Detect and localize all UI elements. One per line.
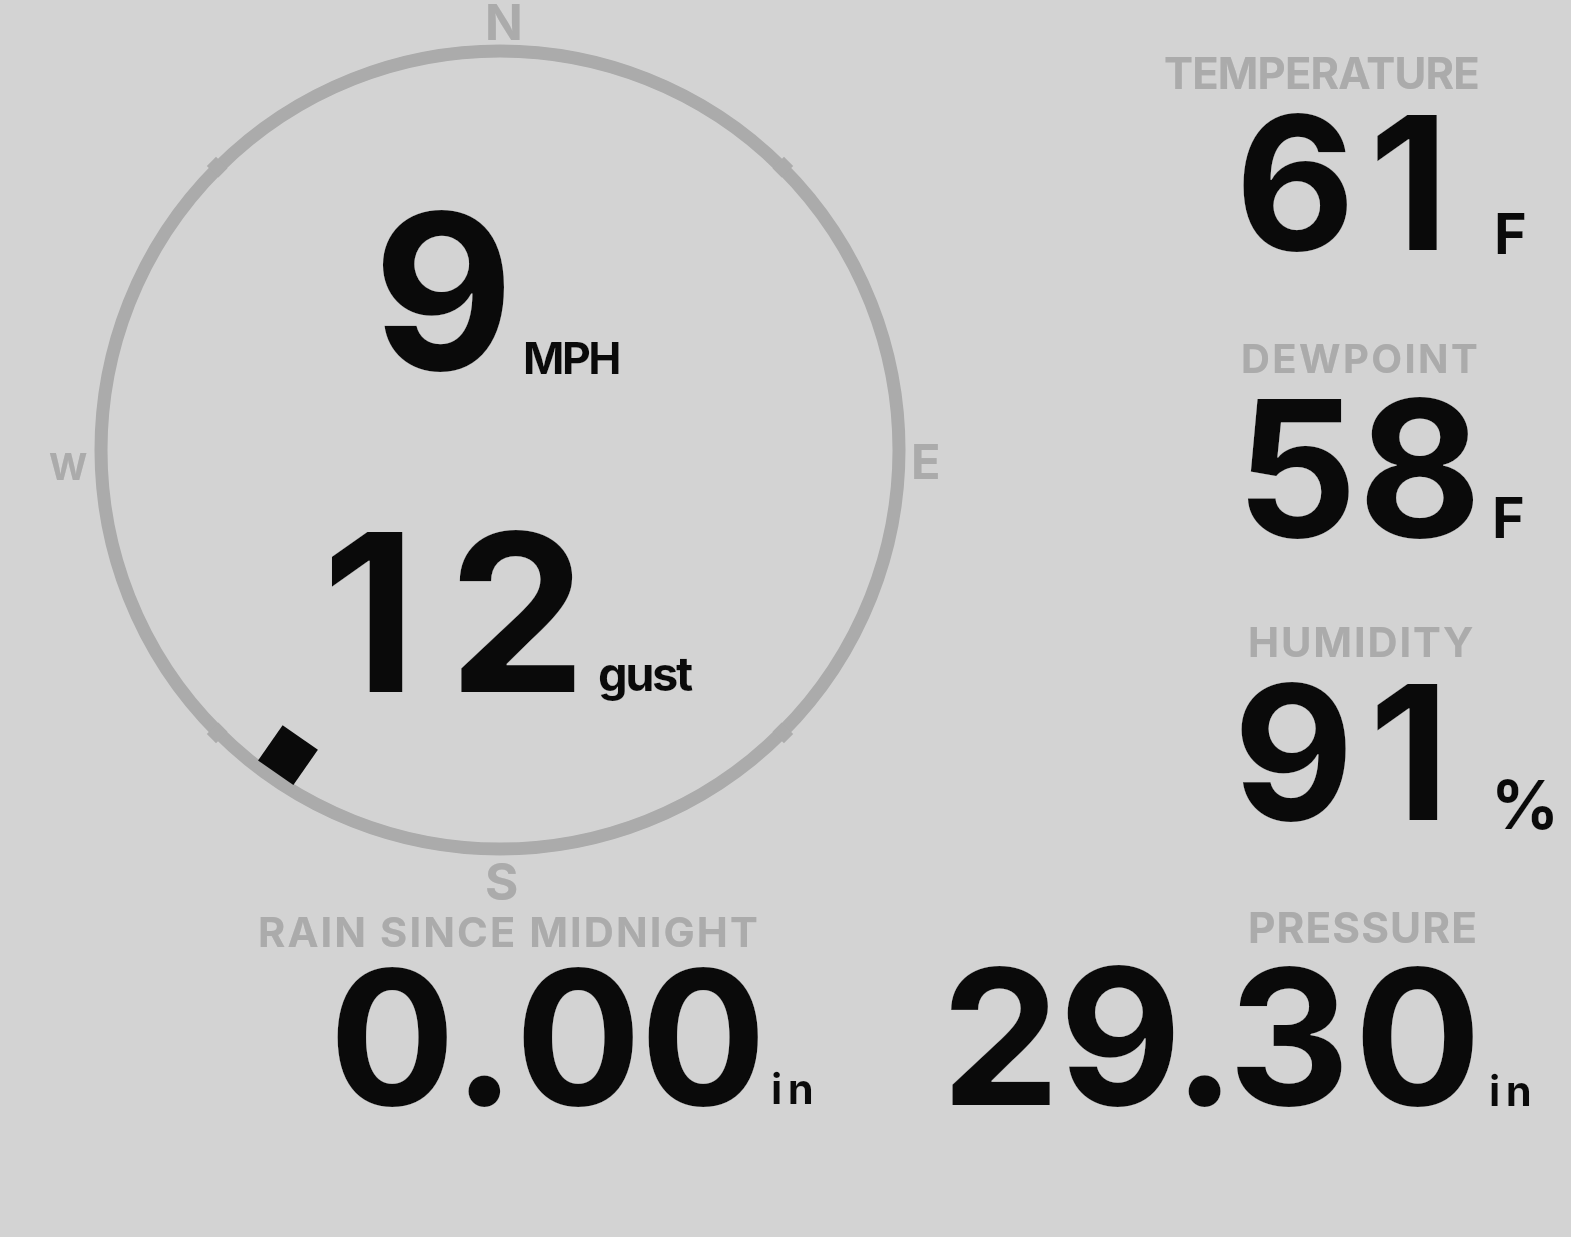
staticText: 9 bbox=[373, 160, 514, 422]
staticText: % bbox=[1491, 764, 1560, 845]
staticText: S bbox=[485, 851, 519, 913]
staticText: MPH bbox=[523, 331, 620, 385]
staticText: 6 bbox=[1235, 70, 1356, 294]
staticText: in bbox=[771, 1064, 820, 1114]
staticText: N bbox=[485, 0, 523, 52]
staticText: W bbox=[49, 444, 88, 489]
staticText: 2 bbox=[941, 922, 1061, 1151]
staticText: E bbox=[911, 432, 941, 491]
staticText: gust bbox=[598, 645, 691, 702]
staticText: F bbox=[1494, 200, 1527, 268]
staticText: 8 bbox=[1358, 353, 1482, 583]
staticText: 9 bbox=[1233, 639, 1355, 865]
staticText: 0 bbox=[640, 923, 767, 1150]
staticText: 9 bbox=[1059, 922, 1182, 1151]
staticText: F bbox=[1492, 484, 1525, 552]
staticText: in bbox=[1489, 1066, 1538, 1116]
staticText: PRESSURE bbox=[1248, 902, 1478, 953]
staticText: TEMPERATURE bbox=[1164, 47, 1479, 100]
staticText: DEWPOINT bbox=[1241, 334, 1481, 382]
staticText: HUMIDITY bbox=[1248, 617, 1476, 667]
staticText: 3 bbox=[1228, 922, 1351, 1151]
staticText: 2 bbox=[448, 479, 587, 745]
staticText: . bbox=[453, 923, 516, 1150]
staticText: 0 bbox=[1354, 922, 1482, 1151]
staticText: 1 bbox=[1369, 639, 1450, 865]
staticText: 0 bbox=[329, 923, 456, 1150]
staticText: 1 bbox=[1369, 70, 1449, 294]
staticText: RAIN SINCE MIDNIGHT bbox=[258, 907, 760, 957]
button[interactable]: Wind direction compass bbox=[80, 30, 920, 870]
staticText: 0 bbox=[515, 923, 642, 1150]
staticText: . bbox=[1173, 922, 1237, 1151]
staticText: 5 bbox=[1236, 353, 1358, 583]
staticText: 1 bbox=[322, 479, 417, 745]
